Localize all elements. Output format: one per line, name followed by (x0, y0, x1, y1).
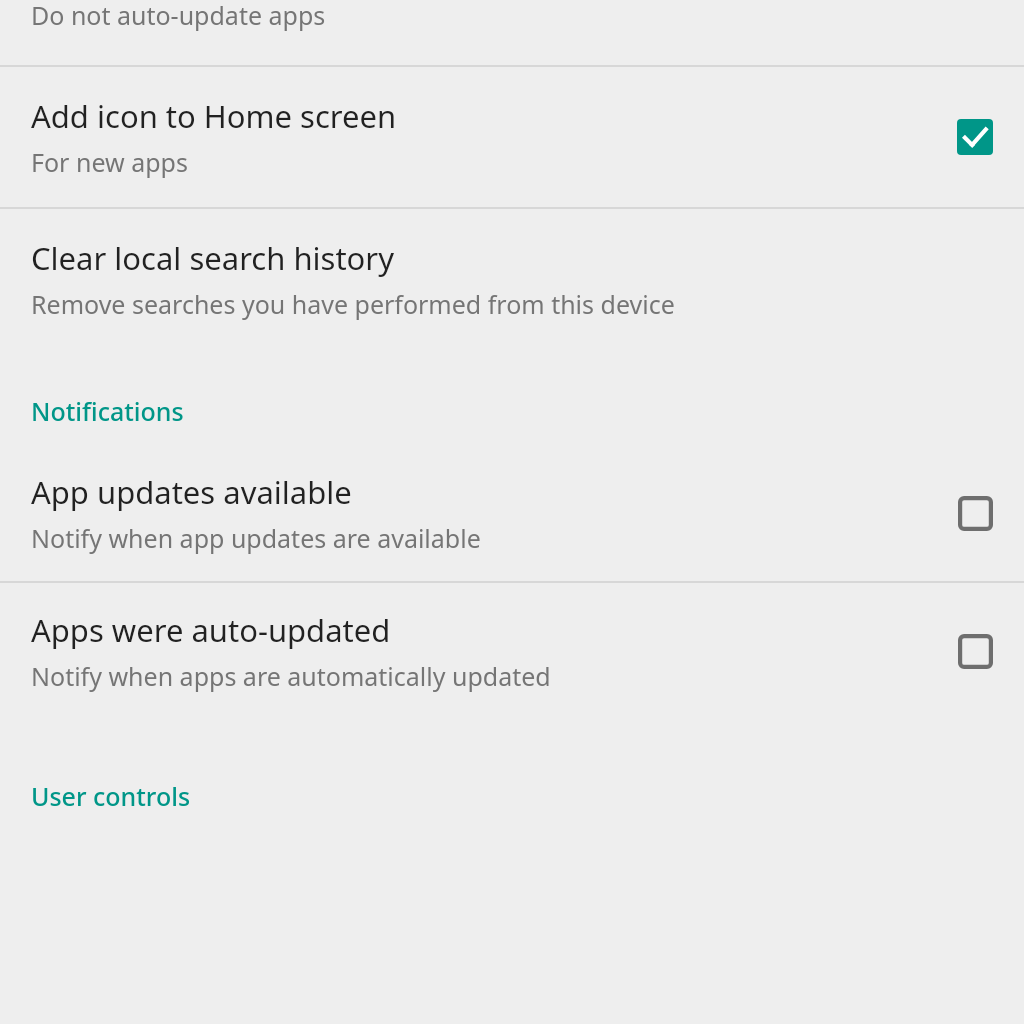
staticText: Apps were auto-updated (31, 609, 391, 651)
button[interactable]: Add icon to Home screen (0, 67, 1024, 207)
button[interactable]: Do not auto-update apps (0, 0, 1024, 65)
staticText: For new apps (31, 145, 188, 179)
button[interactable]: Add icon to Home screen, checked (957, 119, 993, 155)
button[interactable]: App updates available, unchecked (957, 495, 993, 531)
button[interactable]: Clear local search history (0, 209, 1024, 349)
staticText: Notify when app updates are available (31, 521, 481, 555)
staticText: Notify when apps are automatically updat… (31, 659, 551, 693)
staticText: Remove searches you have performed from … (31, 287, 675, 321)
staticText: Add icon to Home screen (31, 95, 397, 137)
button[interactable]: App updates available (0, 449, 1024, 581)
staticText: Notifications (31, 394, 184, 428)
staticText: Do not auto-update apps (31, 0, 326, 32)
staticText: User controls (31, 779, 191, 813)
button[interactable]: Apps were auto-updated, unchecked (957, 633, 993, 669)
staticText: App updates available (31, 471, 352, 513)
staticText: Clear local search history (31, 237, 394, 279)
button[interactable]: Apps were auto-updated (0, 583, 1024, 719)
